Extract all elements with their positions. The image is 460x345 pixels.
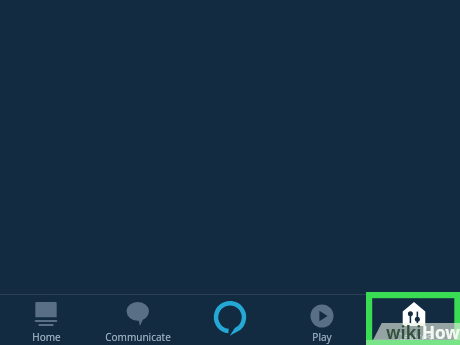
staticText: How: [422, 321, 460, 343]
staticText: wiki: [386, 321, 422, 343]
button[interactable]: Play: [276, 294, 368, 345]
button[interactable]: Devices: [368, 294, 460, 345]
button[interactable]: Communicate: [92, 294, 184, 345]
staticText: Home: [32, 330, 61, 344]
staticText: Play: [312, 330, 332, 344]
button[interactable]: Alexa: [184, 294, 276, 345]
button[interactable]: Home: [0, 294, 92, 345]
staticText: Devices: [396, 330, 432, 344]
staticText: Communicate: [105, 330, 171, 344]
